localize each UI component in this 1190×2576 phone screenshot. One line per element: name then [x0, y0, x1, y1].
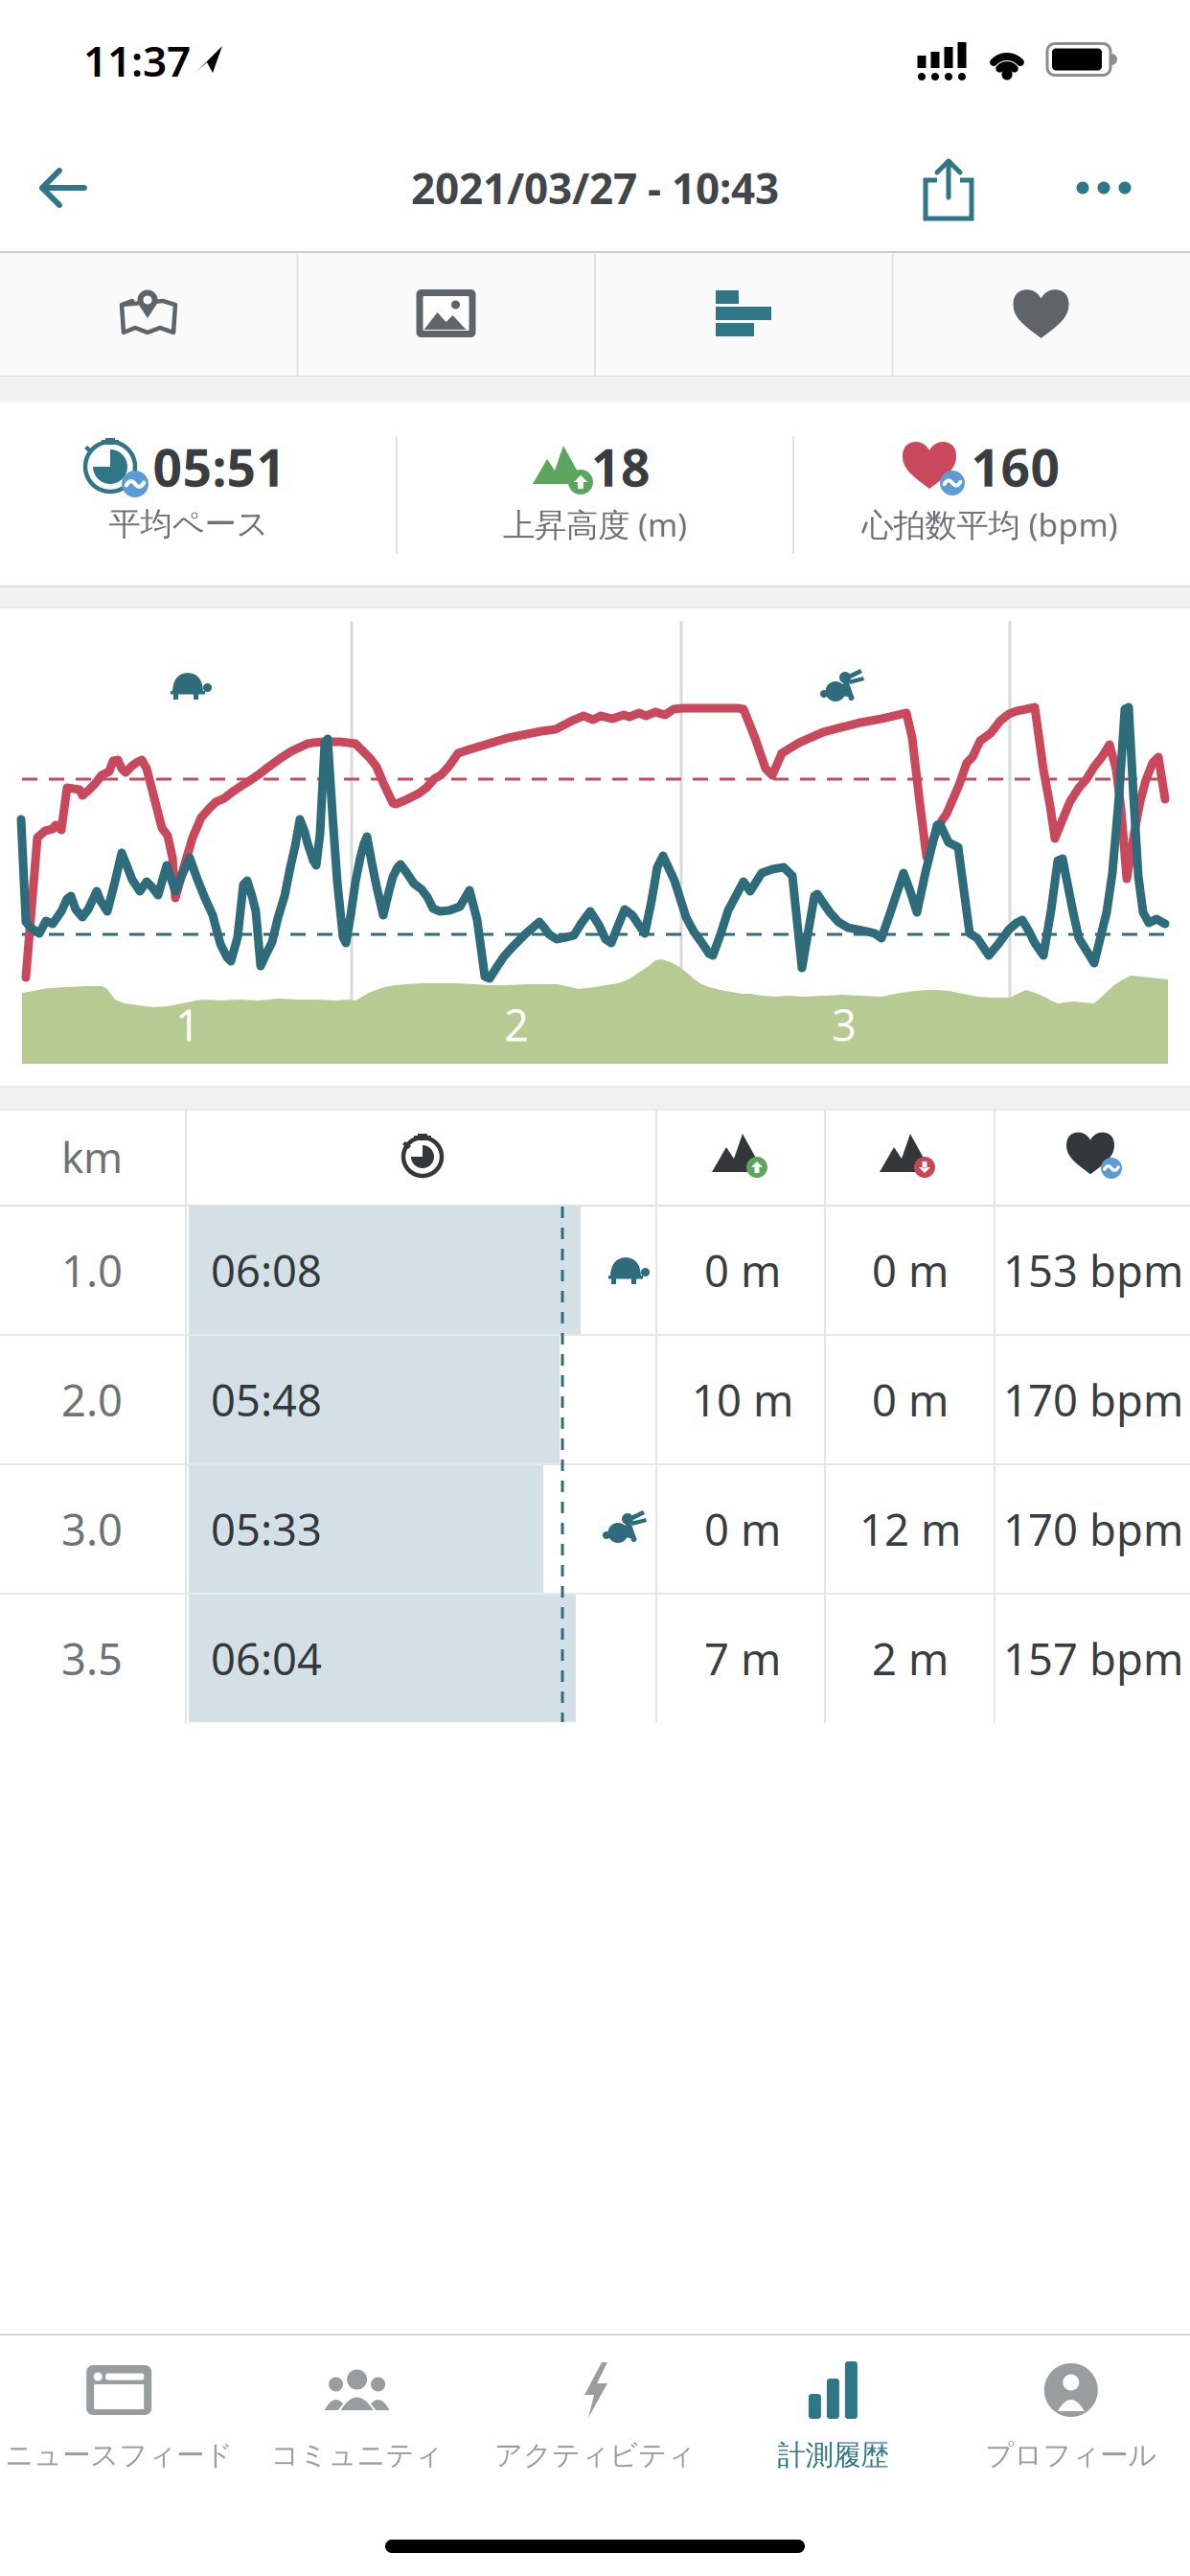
staticText: 上昇高度 (m)	[503, 503, 687, 545]
staticText: コミュニティ	[271, 2438, 443, 2472]
staticText: プロフィール	[985, 2438, 1157, 2472]
staticText: 平均ペース	[109, 505, 269, 544]
button[interactable]: 計測履歴	[714, 2334, 952, 2507]
staticText: 10 m	[692, 1371, 793, 1428]
button[interactable]: Heart rate	[893, 252, 1189, 375]
staticText: 05:48	[211, 1371, 322, 1428]
staticText: 18	[591, 433, 651, 501]
staticText: 11:37	[83, 32, 191, 88]
staticText: ニュースフィード	[5, 2438, 233, 2472]
staticText: 05:51	[153, 433, 286, 501]
staticText: 1	[175, 996, 200, 1053]
staticText: km	[61, 1129, 123, 1185]
button[interactable]: プロフィール	[952, 2334, 1190, 2507]
staticText: 05:33	[211, 1500, 322, 1558]
button[interactable]: ニュースフィード	[0, 2334, 238, 2507]
button[interactable]: Map	[1, 252, 296, 375]
button[interactable]: More	[1061, 149, 1147, 226]
button[interactable]: アクティビティ	[476, 2334, 714, 2507]
staticText: 0 m	[704, 1241, 781, 1299]
button[interactable]: Share	[924, 159, 973, 220]
staticText: 2 m	[872, 1630, 949, 1687]
staticText: 153 bpm	[1003, 1241, 1183, 1299]
staticText: 3	[832, 996, 857, 1053]
button[interactable]: コミュニティ	[238, 2334, 476, 2507]
staticText: 7 m	[704, 1630, 781, 1687]
staticText: 157 bpm	[1003, 1630, 1183, 1687]
staticText: 3.5	[61, 1630, 123, 1687]
staticText: 3.0	[61, 1500, 123, 1558]
staticText: 2021/03/27 - 10:43	[411, 160, 779, 216]
staticText: 170 bpm	[1003, 1500, 1183, 1558]
staticText: 06:08	[211, 1241, 322, 1299]
staticText: 計測履歴	[777, 2438, 889, 2472]
staticText: 0 m	[704, 1500, 781, 1558]
staticText: 0 m	[872, 1241, 949, 1299]
staticText: 160	[971, 433, 1060, 501]
button[interactable]: Splits	[596, 252, 891, 375]
staticText: 170 bpm	[1003, 1371, 1183, 1428]
staticText: アクティビティ	[494, 2438, 696, 2472]
staticText: 1.0	[61, 1241, 123, 1299]
staticText: 2.0	[61, 1371, 123, 1428]
staticText: 06:04	[211, 1630, 322, 1687]
button[interactable]: Photos	[298, 252, 594, 375]
button[interactable]: Back	[20, 145, 106, 231]
staticText: 12 m	[859, 1500, 961, 1558]
staticText: 心拍数平均 (bpm)	[862, 503, 1118, 545]
staticText: 0 m	[872, 1371, 949, 1428]
staticText: 2	[504, 996, 529, 1053]
